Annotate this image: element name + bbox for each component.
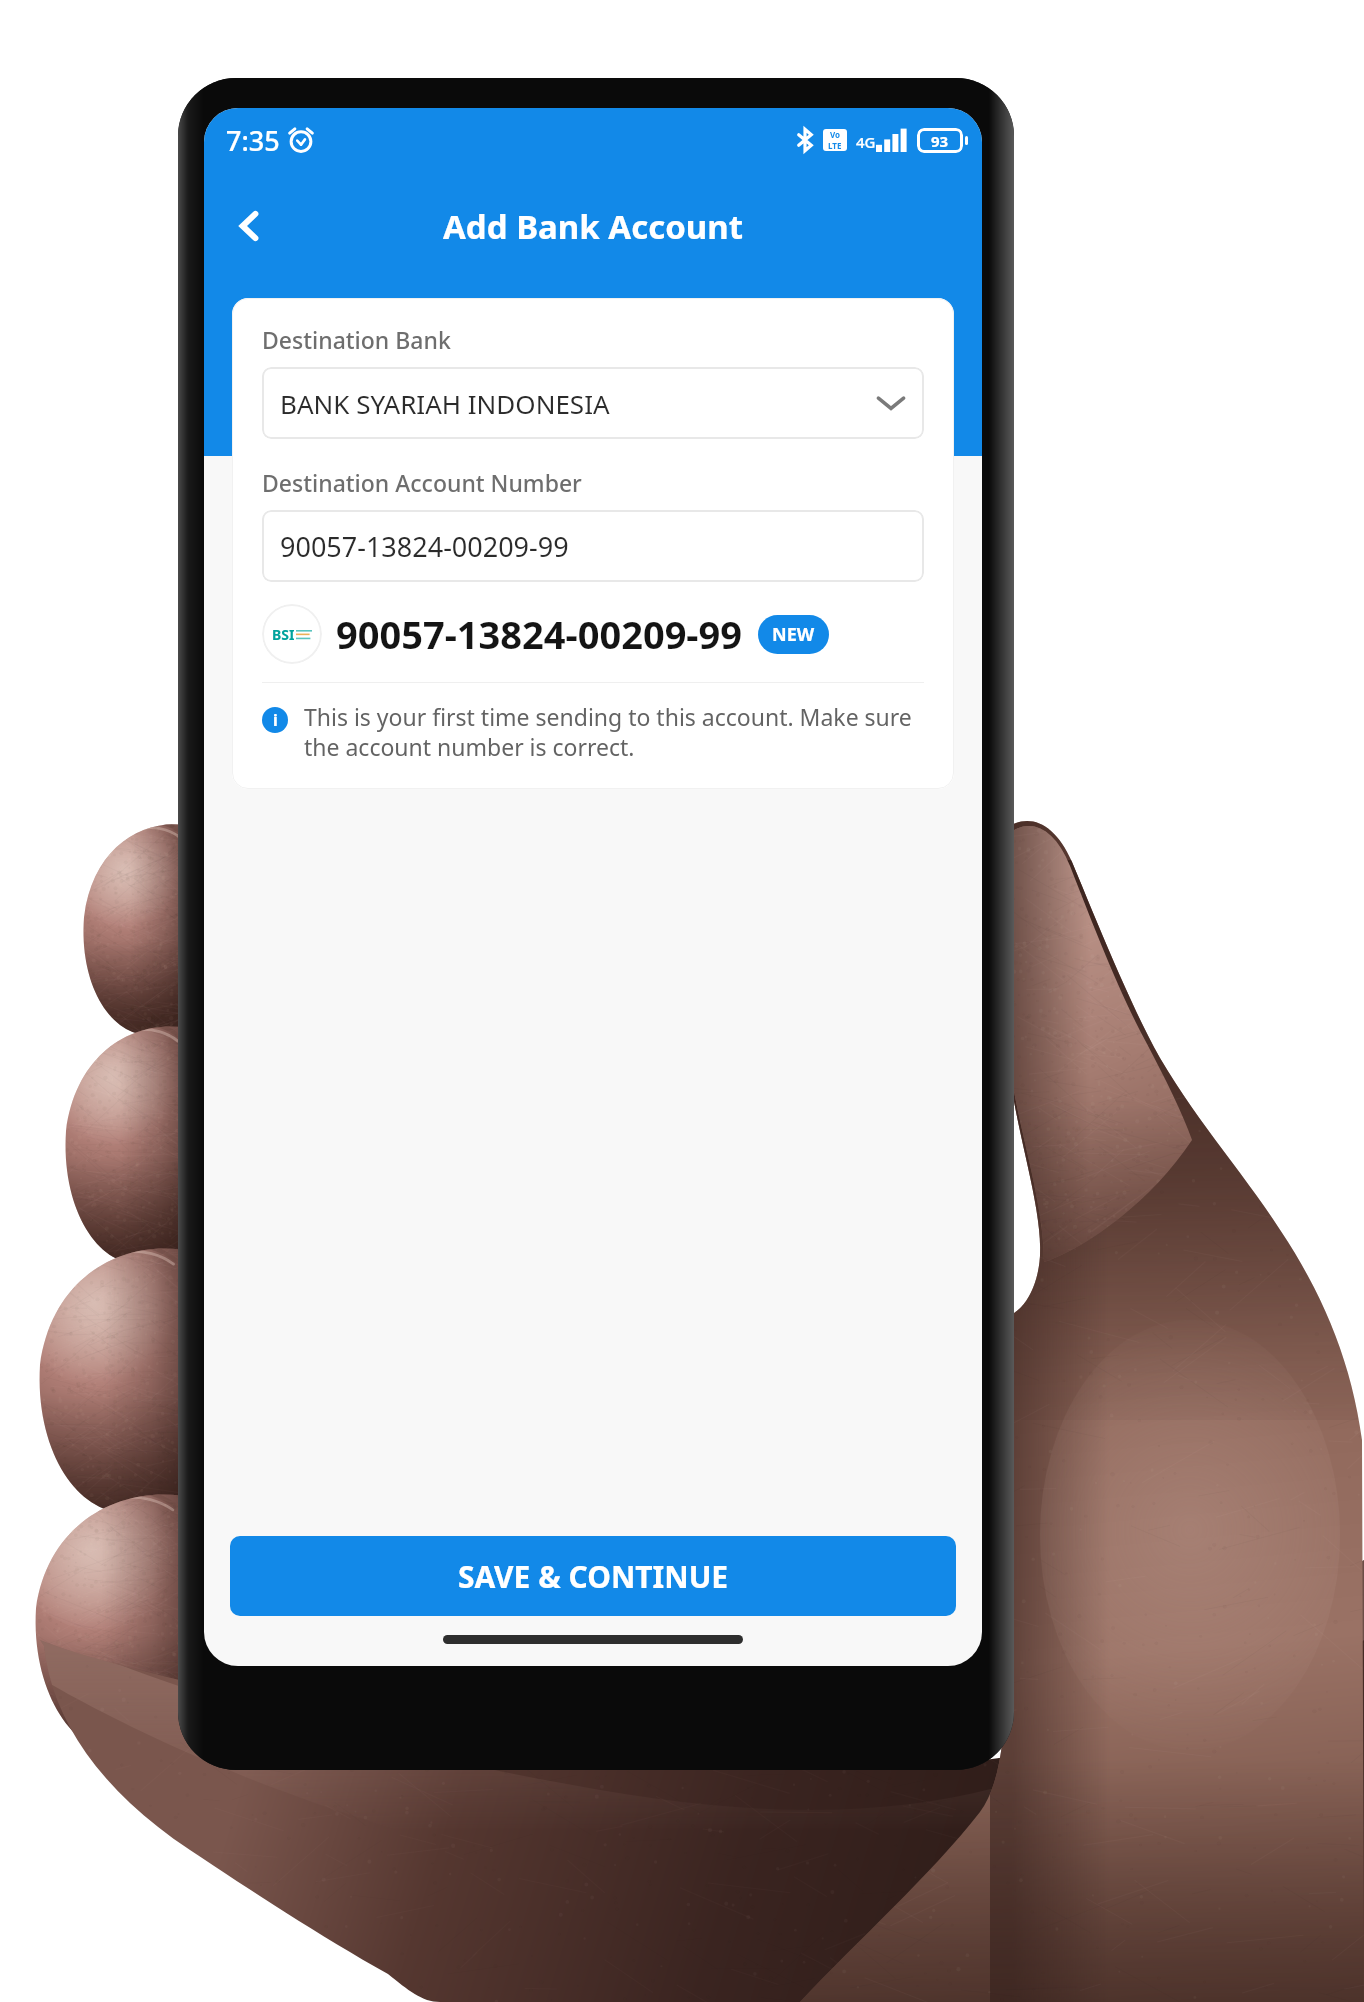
staticText: This is your first time sending to this … bbox=[304, 701, 924, 763]
staticText: 90057-13824-00209-99 bbox=[336, 608, 742, 660]
button[interactable]: BSI bbox=[262, 604, 829, 664]
staticText: BANK SYARIAH INDONESIA bbox=[280, 386, 610, 421]
staticText: Vo bbox=[830, 129, 841, 140]
staticText: 93 bbox=[931, 131, 949, 151]
staticText: SAVE & CONTINUE bbox=[458, 1556, 729, 1597]
staticText: Add Bank Account bbox=[443, 204, 744, 249]
staticText: 7:35 bbox=[226, 122, 280, 159]
staticText: 90057-13824-00209-99 bbox=[280, 528, 569, 565]
staticText: i bbox=[273, 709, 278, 731]
staticText: LTE bbox=[828, 140, 842, 151]
staticText: Destination Bank bbox=[262, 324, 451, 355]
staticText: Destination Account Number bbox=[262, 467, 582, 498]
button[interactable]: 90057-13824-00209-99 bbox=[262, 510, 924, 582]
button[interactable]: SAVE & CONTINUE bbox=[230, 1536, 956, 1616]
staticText: 4G bbox=[856, 132, 876, 152]
button[interactable]: BANK SYARIAH INDONESIA bbox=[262, 367, 924, 439]
button[interactable]: Back bbox=[218, 195, 280, 257]
staticText: NEW bbox=[772, 622, 815, 647]
staticText: BSI bbox=[272, 625, 295, 644]
